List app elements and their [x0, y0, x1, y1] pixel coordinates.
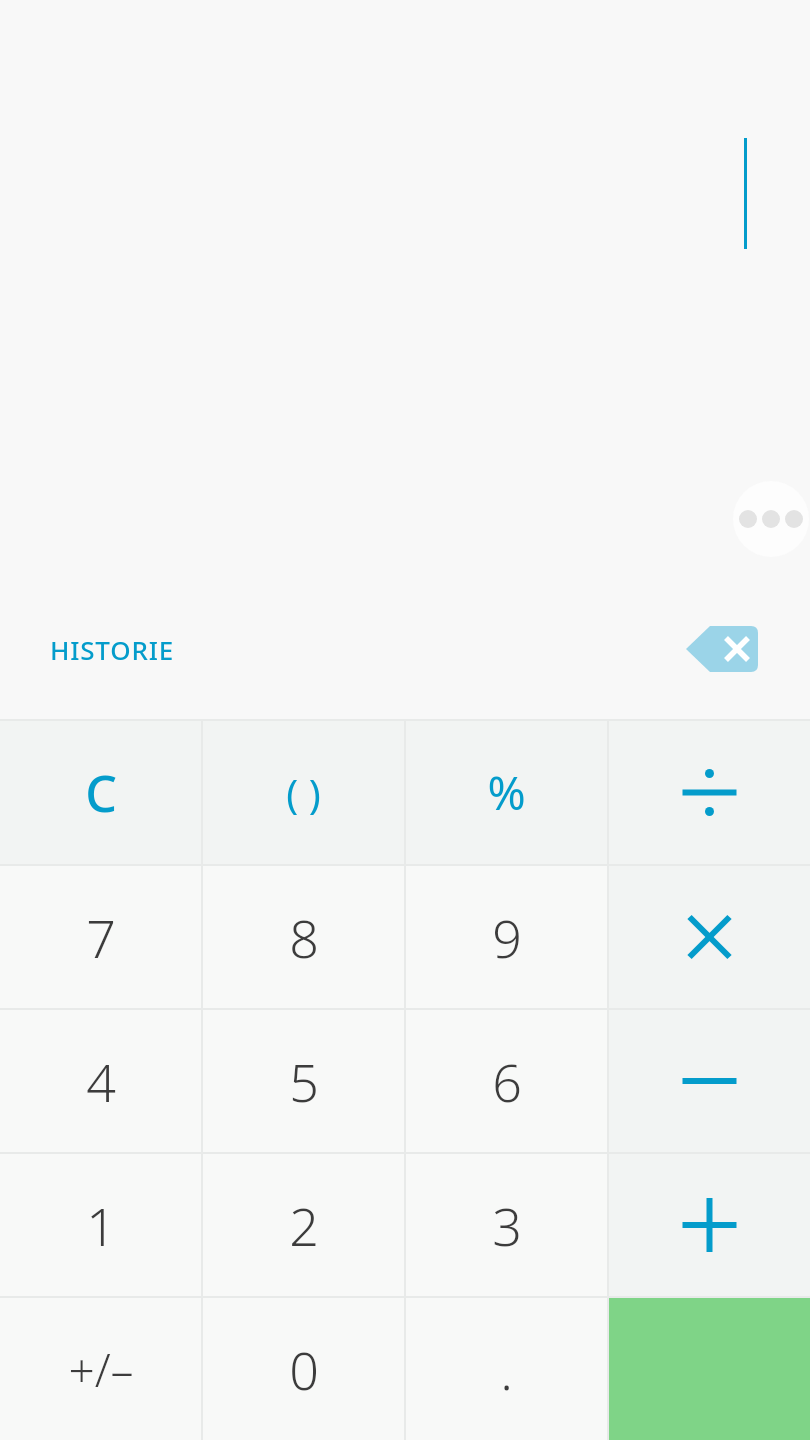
button[interactable]: Plus — [609, 1154, 810, 1296]
staticText: 8 — [289, 902, 319, 973]
button[interactable]: +/– — [0, 1298, 201, 1440]
button[interactable]: HISTORIE — [36, 614, 188, 684]
button[interactable]: 2 — [203, 1154, 404, 1296]
button[interactable]: . — [406, 1298, 607, 1440]
button[interactable]: Multiply — [609, 866, 810, 1008]
button[interactable]: 5 — [203, 1010, 404, 1152]
button[interactable]: 6 — [406, 1010, 607, 1152]
button[interactable]: 1 — [0, 1154, 201, 1296]
staticText: 9 — [492, 902, 522, 973]
staticText: 0 — [289, 1334, 319, 1405]
staticText: C — [85, 759, 117, 827]
button[interactable]: 3 — [406, 1154, 607, 1296]
button[interactable]: C — [0, 721, 201, 864]
button[interactable]: 0 — [203, 1298, 404, 1440]
button[interactable]: Divide — [609, 721, 810, 864]
staticText: 1 — [86, 1190, 116, 1261]
staticText: 6 — [492, 1046, 522, 1117]
staticText: +/– — [68, 1338, 134, 1401]
button[interactable]: 7 — [0, 866, 201, 1008]
staticText: . — [500, 1334, 513, 1405]
button[interactable]: 8 — [203, 866, 404, 1008]
button[interactable]: Backspace — [672, 612, 784, 686]
staticText: 4 — [86, 1046, 116, 1117]
staticText: % — [487, 761, 526, 824]
staticText: 7 — [86, 902, 116, 973]
button[interactable]: 9 — [406, 866, 607, 1008]
button[interactable]: 4 — [0, 1010, 201, 1152]
staticText: 5 — [289, 1046, 319, 1117]
button[interactable]: Minus — [609, 1010, 810, 1152]
staticText: HISTORIE — [50, 632, 174, 667]
button[interactable]: More options — [733, 481, 809, 557]
button[interactable]: ( ) — [203, 721, 404, 864]
button[interactable]: % — [406, 721, 607, 864]
staticText: 3 — [492, 1190, 522, 1261]
staticText: 2 — [289, 1190, 319, 1261]
staticText: ( ) — [286, 766, 321, 820]
